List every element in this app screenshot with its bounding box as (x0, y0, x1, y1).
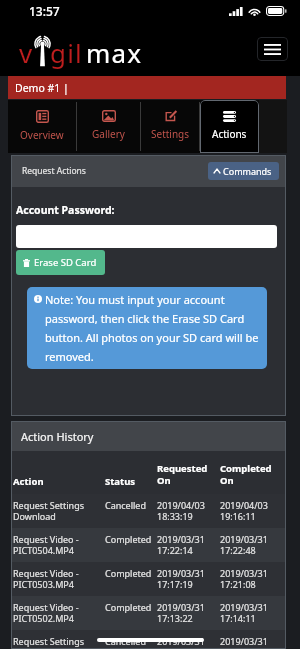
button[interactable]: Request Video - PICT0502.MP4 (11, 596, 286, 630)
staticText: Cancelled (105, 635, 157, 647)
button[interactable]: Settings (141, 100, 199, 153)
staticText: Note: You must input your account passwo… (45, 292, 261, 364)
staticText: Commands (223, 165, 272, 177)
staticText: Completed (105, 533, 157, 545)
staticText: Request Settings Download (13, 635, 105, 649)
staticText: max (86, 35, 143, 70)
staticText: Actions (212, 127, 247, 141)
staticText: 2019/03/31 17:13:39 (220, 635, 286, 649)
button[interactable]: Request Video - PICT0504.MP4 (11, 528, 286, 562)
staticText: Request Video - PICT0503.MP4 (13, 567, 105, 591)
staticText: Cancelled (105, 499, 157, 511)
staticText: v (19, 35, 34, 70)
staticText: Overview (20, 128, 64, 142)
button[interactable]: Actions (200, 100, 259, 153)
staticText: Account Password: (16, 203, 115, 217)
staticText: Action History (21, 429, 94, 444)
staticText: 2019/04/03 19:16:11 (220, 499, 286, 523)
staticText: Request Actions (22, 165, 86, 177)
staticText: Action (13, 475, 44, 488)
staticText: Demo #1 | (15, 81, 69, 95)
button[interactable]: Erase SD Card (16, 250, 105, 275)
staticText: 2019/03/31 17:17:19 (157, 567, 220, 591)
staticText: 2019/03/31 17:14:11 (220, 601, 286, 625)
staticText: Request Settings Download (13, 499, 105, 523)
staticText: 2019/03/31 17:22:14 (157, 533, 220, 557)
staticText: Completed (105, 567, 157, 579)
staticText: 2019/03/31 15:56:56 (157, 635, 220, 649)
button[interactable] (16, 225, 277, 248)
button[interactable]: Menu (257, 37, 288, 61)
button[interactable]: Request Settings Download (11, 494, 286, 528)
staticText: Settings (151, 127, 190, 141)
staticText: Erase SD Card (34, 256, 97, 269)
staticText: 2019/03/31 17:21:08 (220, 567, 286, 591)
staticText: 2019/04/03 18:33:19 (157, 499, 220, 523)
staticText: Gallery (92, 127, 125, 141)
staticText: gil (50, 35, 84, 70)
staticText: Request Video - PICT0504.MP4 (13, 533, 105, 557)
button[interactable]: Request Video - PICT0503.MP4 (11, 562, 286, 596)
staticText: Status (105, 475, 136, 488)
staticText: Completed (105, 601, 157, 613)
staticText: 2019/03/31 17:13:22 (157, 601, 220, 625)
staticText: 13:57 (29, 3, 60, 19)
staticText: Request Video - PICT0502.MP4 (13, 601, 105, 625)
button[interactable]: Request Settings Download (11, 630, 286, 649)
staticText: 2019/03/31 17:22:48 (220, 533, 286, 557)
staticText: Completed On (220, 462, 272, 487)
button[interactable]: Commands (208, 162, 279, 180)
button[interactable]: Gallery (77, 100, 140, 153)
button[interactable]: Overview (8, 100, 76, 153)
staticText: Requested On (157, 462, 208, 487)
